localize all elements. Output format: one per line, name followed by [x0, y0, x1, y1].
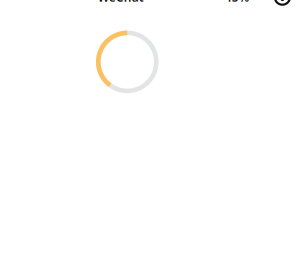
staticText: WeChat — [98, 0, 144, 5]
button[interactable]: Status — [275, 0, 290, 5]
staticText: 45% — [225, 0, 250, 5]
